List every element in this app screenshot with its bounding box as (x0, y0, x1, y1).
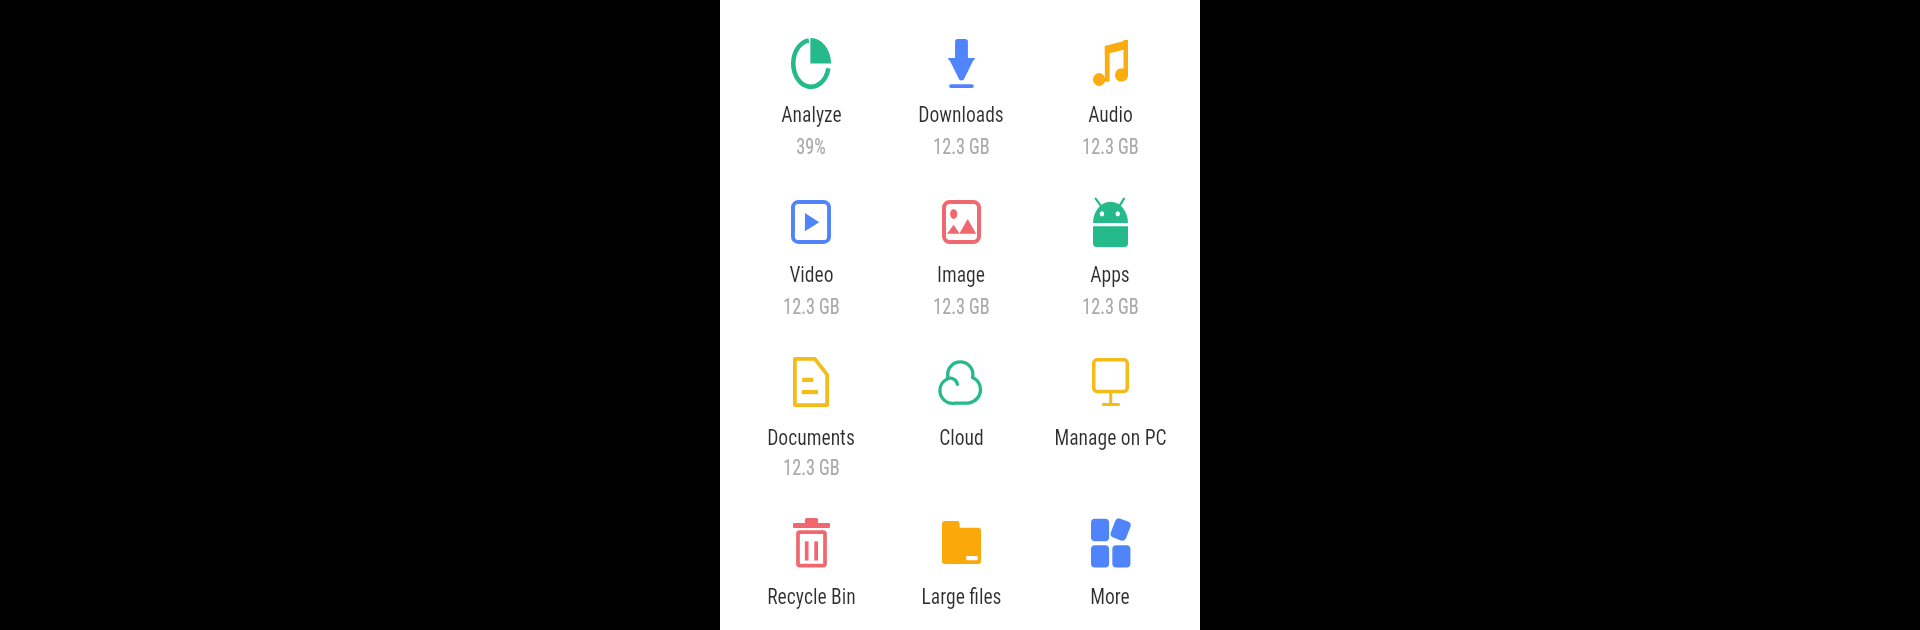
staticText: Video (789, 261, 834, 288)
button[interactable]: Cloud (886, 302, 1036, 472)
staticText: 12.3 GB (1082, 294, 1139, 319)
staticText: Cloud (939, 424, 984, 451)
staticText: 12.3 GB (1082, 134, 1139, 159)
button[interactable]: Apps (1035, 142, 1185, 312)
button[interactable]: More (1035, 462, 1185, 630)
staticText: 39% (796, 134, 826, 159)
button[interactable]: Manage on PC (1035, 302, 1185, 472)
staticText: Audio (1088, 101, 1133, 128)
button[interactable]: Video (736, 142, 886, 312)
staticText: Manage on PC (1054, 424, 1167, 451)
button[interactable]: Recycle Bin (736, 462, 886, 630)
staticText: Downloads (918, 101, 1004, 128)
staticText: Analyze (781, 101, 842, 128)
staticText: 12.3 GB (783, 455, 840, 480)
staticText: 12.3 GB (933, 294, 990, 319)
staticText: Large files (921, 583, 1002, 610)
button[interactable]: Large files (886, 462, 1036, 630)
staticText: 12.3 GB (783, 294, 840, 319)
button[interactable]: Documents (736, 302, 886, 472)
staticText: Recycle Bin (767, 583, 856, 610)
button[interactable]: Downloads (886, 0, 1036, 153)
staticText: Documents (767, 424, 855, 451)
staticText: Apps (1090, 261, 1130, 288)
staticText: 12.3 GB (933, 134, 990, 159)
button[interactable]: Analyze (736, 0, 886, 153)
button[interactable]: Image (886, 142, 1036, 312)
button[interactable]: Audio (1035, 0, 1185, 153)
staticText: More (1090, 583, 1130, 610)
staticText: Image (937, 261, 985, 288)
